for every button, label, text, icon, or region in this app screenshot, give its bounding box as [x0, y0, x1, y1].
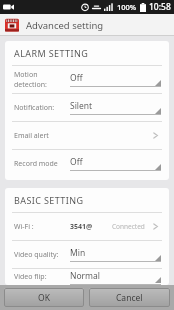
button[interactable]: Video quality:: [5, 241, 169, 268]
staticText: Advanced setting: [26, 19, 104, 32]
staticText: Video quality:: [14, 250, 59, 260]
button[interactable]: Cancel: [89, 288, 170, 307]
button[interactable]: Motion detection:: [5, 66, 169, 93]
staticText: 3541@: [70, 222, 93, 232]
button[interactable]: Email alert: [5, 122, 169, 149]
other: Open: [151, 131, 160, 140]
staticText: Silent: [70, 100, 93, 112]
staticText: Notification:: [14, 103, 55, 113]
staticText: Record mode: [14, 159, 58, 169]
button[interactable]: Video flip:: [5, 269, 169, 285]
staticText: Off: [70, 72, 83, 84]
staticText: Email alert: [14, 131, 49, 141]
staticText: 100%: [117, 2, 137, 12]
staticText: ALARM SETTING: [14, 47, 89, 59]
staticText: Wi-Fi :: [14, 222, 34, 232]
staticText: Motion detection:: [14, 70, 70, 90]
button[interactable]: Notification:: [5, 94, 169, 121]
staticText: 10:58: [149, 1, 171, 13]
staticText: Connected: [112, 222, 145, 231]
staticText: Normal: [70, 270, 101, 282]
staticText: Cancel: [116, 292, 143, 304]
staticText: BASIC SETTING: [14, 194, 84, 206]
other: App icon: [5, 18, 19, 32]
staticText: Off: [70, 156, 83, 168]
staticText: OK: [38, 292, 50, 304]
staticText: Min: [70, 247, 86, 259]
staticText: Video flip:: [14, 272, 47, 282]
button[interactable]: Wi-Fi :: [5, 213, 169, 240]
other: Open: [151, 222, 160, 231]
button[interactable]: Record mode: [5, 150, 169, 177]
button[interactable]: OK: [4, 288, 84, 307]
